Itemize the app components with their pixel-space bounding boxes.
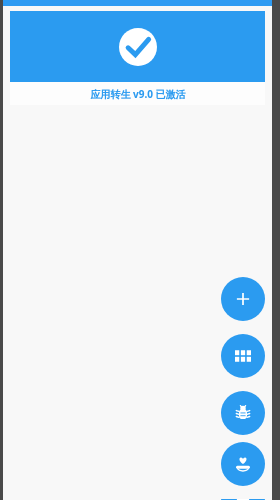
- staticText: 应用转生 v9.0 已激活: [90, 87, 186, 101]
- button[interactable]: All apps: [221, 334, 265, 378]
- button[interactable]: Donate: [221, 442, 265, 486]
- button[interactable]: Add: [221, 277, 265, 321]
- button[interactable]: More: [221, 499, 265, 500]
- button[interactable]: 应用转生 v9.0 已激活: [10, 82, 265, 105]
- button[interactable]: Debug: [221, 391, 265, 435]
